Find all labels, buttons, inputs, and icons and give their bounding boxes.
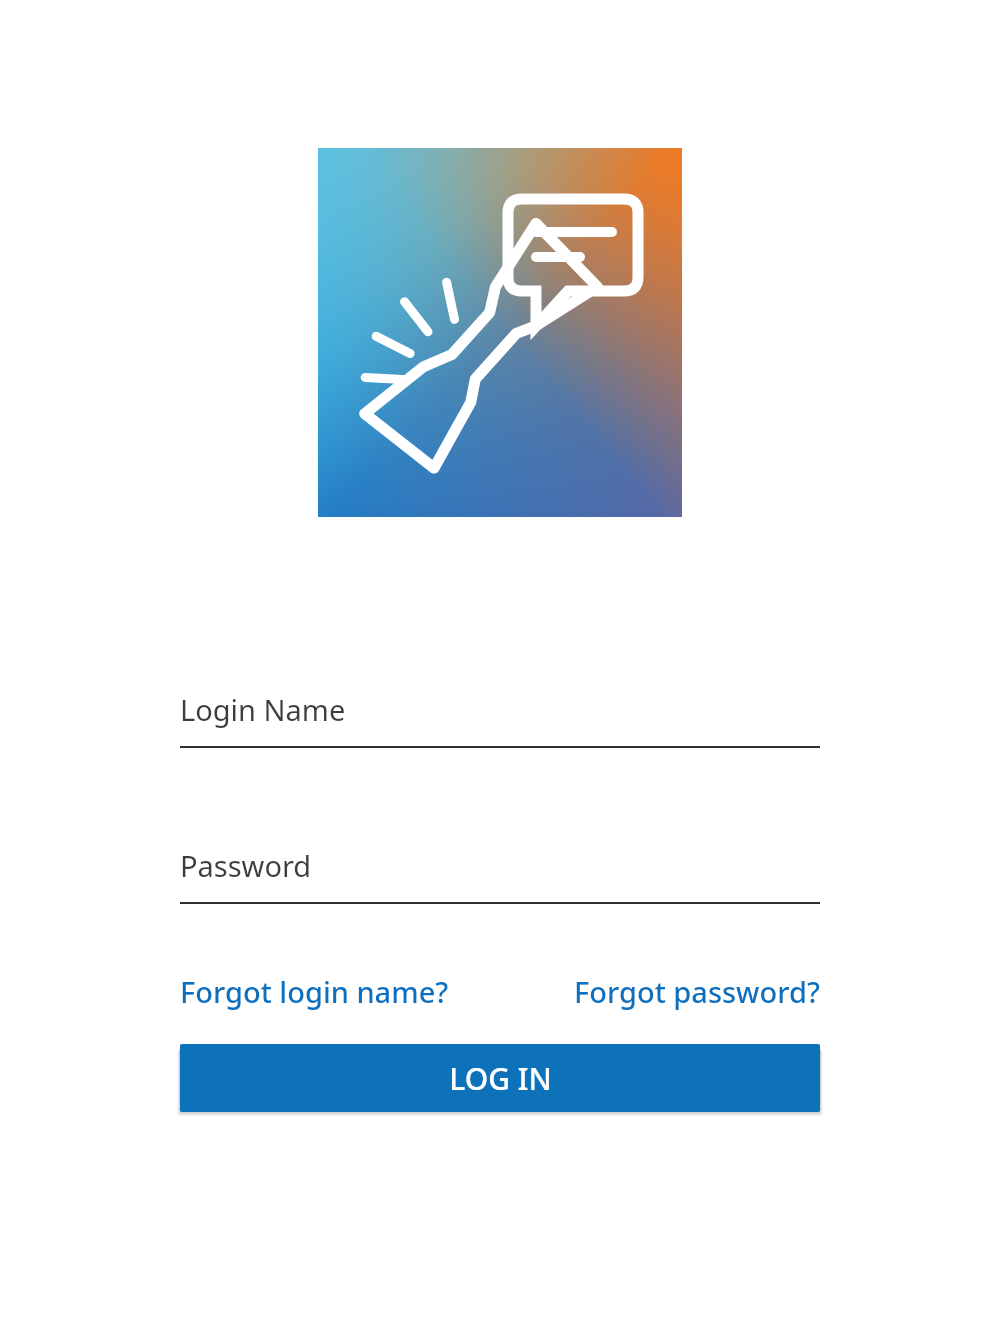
button[interactable]: Forgot password? [574,972,820,1011]
button[interactable]: Password [180,846,820,904]
staticText: Forgot login name? [180,972,449,1011]
staticText: Login Name [180,690,346,729]
button[interactable]: Login Name [180,690,820,748]
button[interactable]: Forgot login name? [180,972,449,1011]
staticText: Forgot password? [574,972,820,1011]
button[interactable]: LOG IN [180,1044,820,1112]
staticText: Password [180,846,312,885]
staticText: LOG IN [449,1058,552,1099]
